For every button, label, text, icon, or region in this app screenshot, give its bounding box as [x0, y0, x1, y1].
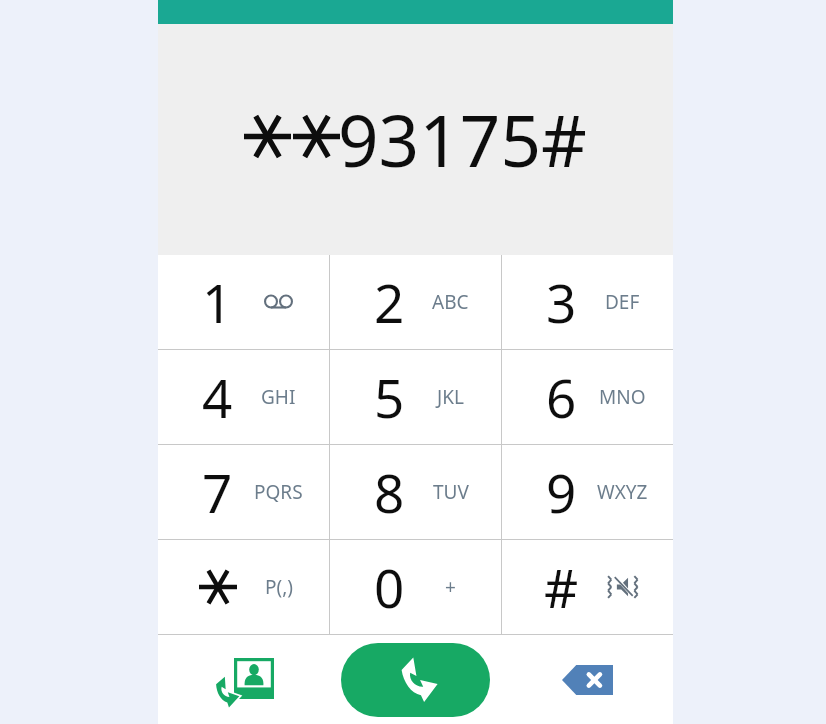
staticText: 0	[374, 551, 405, 623]
staticText: 1	[202, 266, 233, 338]
staticText: P(,)	[265, 574, 293, 600]
button[interactable]: 6	[502, 350, 673, 444]
staticText: WXYZ	[597, 479, 648, 505]
button[interactable]: Call log	[204, 644, 282, 722]
staticText: 7	[202, 456, 233, 528]
staticText: 3	[546, 266, 577, 338]
staticText: 6	[546, 361, 577, 433]
staticText: GHI	[261, 384, 296, 410]
button[interactable]: P(,)	[158, 540, 329, 634]
staticText: 5	[374, 361, 405, 433]
button[interactable]: 5	[330, 350, 501, 444]
staticText: 4	[202, 361, 233, 433]
staticText: TUV	[433, 479, 469, 505]
button[interactable]: 4	[158, 350, 329, 444]
button[interactable]: #	[502, 540, 673, 634]
staticText: 2	[374, 266, 405, 338]
staticText: ABC	[432, 289, 469, 315]
button[interactable]: 2	[330, 255, 501, 349]
staticText: 9	[546, 456, 577, 528]
staticText: +	[445, 574, 456, 600]
button[interactable]: 1	[158, 255, 329, 349]
button[interactable]: Backspace	[548, 641, 626, 719]
staticText: #	[544, 551, 579, 623]
button[interactable]: 8	[330, 445, 501, 539]
staticText: 8	[374, 456, 405, 528]
button[interactable]: 3	[502, 255, 673, 349]
button[interactable]: 0	[330, 540, 501, 634]
staticText: 93175#	[338, 91, 587, 188]
staticText: JKL	[437, 384, 464, 410]
staticText: PQRS	[254, 479, 303, 505]
button[interactable]: 7	[158, 445, 329, 539]
button[interactable]: Call	[341, 643, 490, 717]
staticText: DEF	[605, 289, 640, 315]
staticText: MNO	[599, 384, 646, 410]
button[interactable]: 9	[502, 445, 673, 539]
